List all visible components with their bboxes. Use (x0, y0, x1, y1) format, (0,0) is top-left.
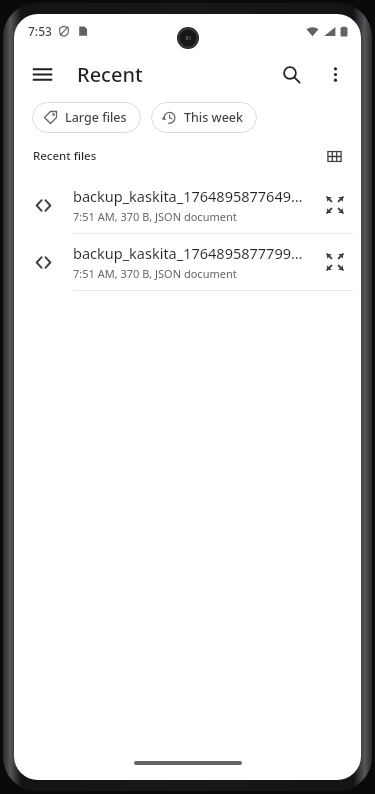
staticText: 7:51 AM, 370 B, JSON document (73, 209, 237, 224)
button[interactable]: backup_kaskita_1764895877799.… (14, 234, 361, 291)
staticText: backup_kaskita_1764895877799.… (73, 243, 305, 263)
button[interactable]: Open navigation drawer (20, 52, 64, 96)
staticText: Recent files (33, 148, 97, 164)
staticText: Large files (65, 109, 127, 126)
button[interactable]: backup_kaskita_1764895877649.… (14, 177, 361, 234)
staticText: 7:53 (28, 23, 52, 39)
button[interactable]: Search (269, 52, 313, 96)
staticText: This week (184, 109, 243, 126)
button[interactable]: This week (151, 102, 257, 133)
button[interactable]: Expand file (313, 240, 357, 284)
staticText: 7:51 AM, 370 B, JSON document (73, 266, 237, 281)
button[interactable]: Large files (32, 102, 141, 133)
staticText: backup_kaskita_1764895877649.… (73, 186, 305, 206)
staticText: Recent (77, 61, 143, 88)
button[interactable]: More options (313, 52, 357, 96)
button[interactable]: Expand file (313, 183, 357, 227)
button[interactable]: Switch to grid view (317, 141, 351, 171)
